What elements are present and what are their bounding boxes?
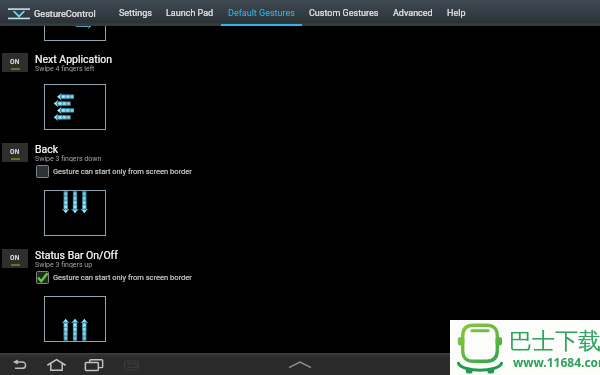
button[interactable]: Custom Gestures [302, 0, 386, 26]
button[interactable]: Keyboard [124, 360, 139, 371]
staticText: Custom Gestures [309, 8, 379, 19]
staticText: GestureControl [34, 8, 96, 19]
button[interactable]: ON [0, 143, 600, 162]
button[interactable]: Show navigation bar [287, 360, 313, 370]
button[interactable]: GestureControl logo [0, 0, 34, 26]
staticText: ON [10, 148, 20, 156]
button[interactable]: Default Gestures [221, 0, 302, 26]
staticText: 巴士下载 [509, 327, 600, 356]
button[interactable] [36, 271, 49, 284]
button[interactable]: ON [0, 249, 600, 268]
staticText: Launch Pad [166, 8, 214, 19]
staticText: Gesture can start only from screen borde… [53, 167, 192, 176]
button[interactable]: Gesture can start only from screen borde… [36, 271, 192, 284]
staticText: ON [10, 58, 20, 66]
button[interactable]: Settings [112, 0, 159, 26]
staticText: ON [10, 254, 20, 262]
button[interactable]: Advanced [386, 0, 440, 26]
button[interactable]: Launch Pad [159, 0, 221, 26]
staticText: Default Gestures [228, 8, 295, 19]
staticText: Swipe 3 fingers down [35, 155, 102, 162]
staticText: Status Bar On/Off [35, 249, 118, 261]
staticText: Help [447, 8, 466, 19]
staticText: www.11684.com [513, 354, 600, 370]
staticText: Back [35, 143, 59, 155]
staticText: Settings [119, 8, 152, 19]
button[interactable]: Gesture can start only from screen borde… [36, 165, 192, 178]
staticText: Next Application [35, 53, 113, 65]
button[interactable] [36, 165, 49, 178]
staticText: Gesture can start only from screen borde… [53, 273, 192, 282]
button[interactable]: Help [440, 0, 473, 26]
staticText: Swipe 4 fingers left [35, 65, 95, 72]
button[interactable] [44, 190, 106, 236]
button[interactable]: Home [47, 359, 66, 371]
button[interactable]: Back [11, 359, 27, 371]
button[interactable] [44, 296, 106, 342]
button[interactable]: ON [0, 53, 600, 72]
staticText: Advanced [393, 8, 433, 19]
button[interactable]: ON [2, 249, 28, 268]
button[interactable]: ON [2, 143, 28, 162]
button[interactable]: ON [2, 53, 28, 72]
staticText: Swipe 3 fingers up [35, 261, 93, 268]
button[interactable] [44, 84, 106, 130]
button[interactable]: Recent apps [85, 359, 103, 371]
button[interactable] [44, 26, 106, 41]
